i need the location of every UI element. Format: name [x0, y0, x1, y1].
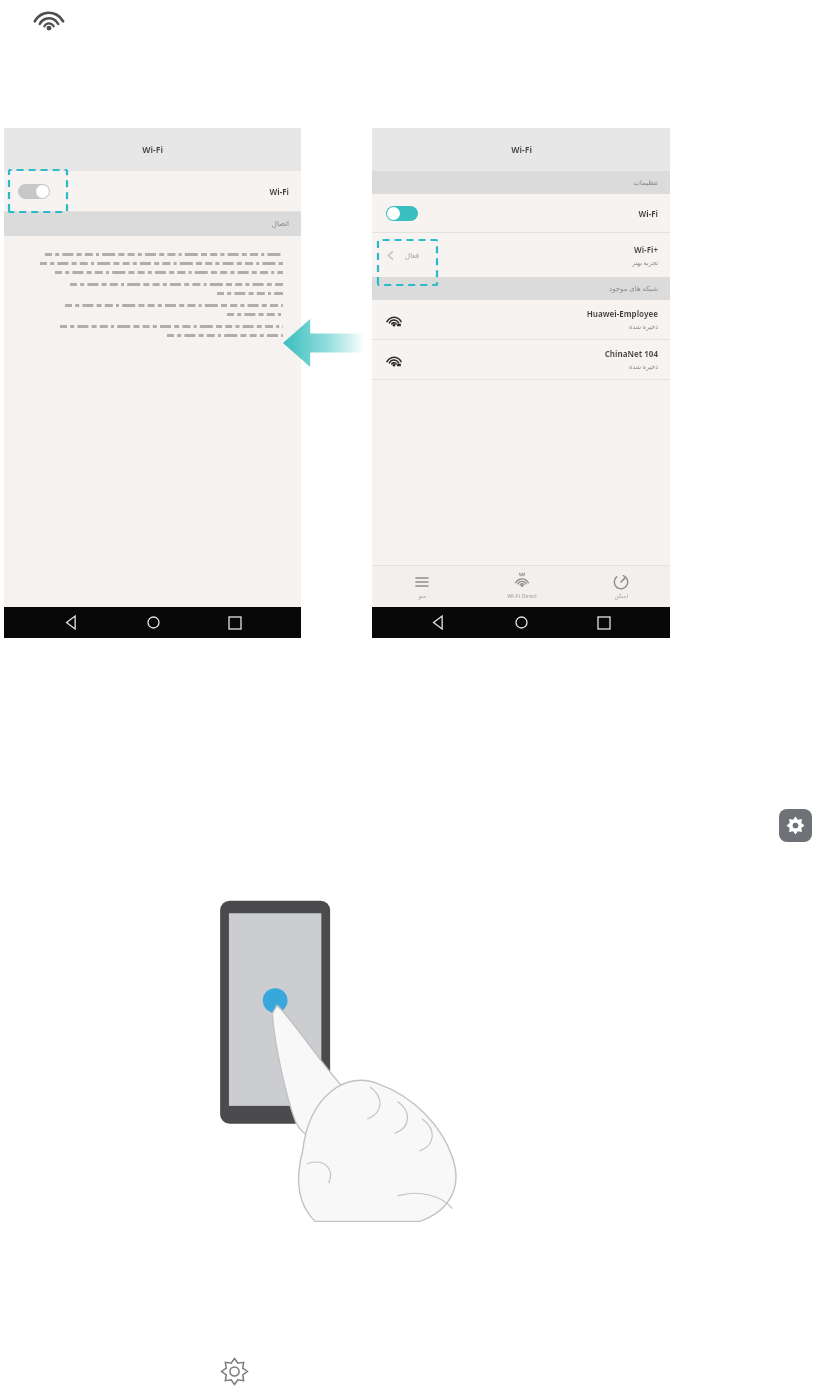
button[interactable]: Huawei-Employee [372, 300, 670, 339]
staticText: ChinaNet 104 [604, 348, 658, 359]
button[interactable]: Wi-Fi on [372, 194, 670, 232]
button[interactable]: Home [147, 616, 160, 629]
staticText: Wi-Fi [638, 208, 658, 219]
button[interactable]: Back [65, 616, 78, 629]
other: Wi-Fi [31, 4, 67, 32]
button[interactable]: Home [515, 616, 528, 629]
staticText: تنظیمات [633, 179, 658, 187]
staticText: شبکه های موجود [609, 284, 658, 294]
staticText: Wi-Fi [511, 144, 532, 156]
staticText: Wi-Fi [269, 186, 289, 197]
staticText: Wi-Fi [142, 144, 163, 156]
button[interactable]: ChinaNet 104 [372, 340, 670, 379]
button[interactable]: Wi-Fi off [18, 184, 50, 199]
button[interactable]: Wi-Fi off [4, 171, 301, 211]
button[interactable]: Wi-Fi Direct [472, 566, 571, 607]
staticText: فعال [405, 252, 419, 260]
button[interactable]: Wi-Fi on [386, 206, 418, 221]
staticText: منو [418, 593, 426, 600]
button[interactable]: منو [372, 566, 472, 607]
staticText: Wi-Fi Direct [507, 592, 537, 600]
staticText: Wi-Fi+ [633, 244, 658, 255]
staticText: Huawei-Employee [586, 308, 658, 319]
staticText: اسکن [614, 593, 628, 600]
button[interactable]: فعال [372, 233, 670, 277]
staticText: ذخیره شده [629, 362, 658, 371]
button[interactable]: Recents [229, 617, 241, 629]
button[interactable]: Settings [779, 809, 812, 842]
staticText: اتصال [271, 220, 289, 228]
button[interactable]: Recents [598, 617, 610, 629]
staticText: تجربه بهتر [631, 258, 658, 267]
button[interactable]: اسکن [571, 566, 670, 607]
button[interactable]: Back [432, 616, 445, 629]
other: Settings [221, 1358, 248, 1385]
staticText: ذخیره شده [629, 322, 658, 331]
